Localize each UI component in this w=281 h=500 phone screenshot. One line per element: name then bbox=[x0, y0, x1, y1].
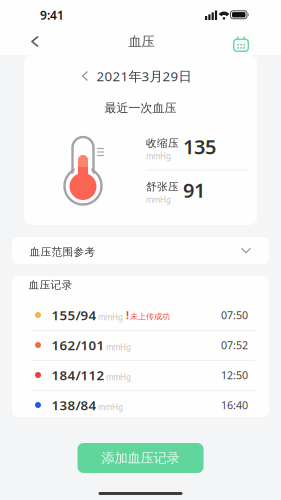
staticText: 收缩压 bbox=[146, 137, 179, 150]
staticText: 07:50 bbox=[221, 308, 248, 322]
staticText: 07:52 bbox=[221, 338, 248, 352]
button[interactable]: Calendar bbox=[227, 30, 255, 58]
staticText: 未上传成功 bbox=[130, 312, 170, 321]
button[interactable]: 138/84 bbox=[12, 390, 269, 420]
button[interactable]: 184/112 bbox=[12, 360, 269, 390]
staticText: ! bbox=[126, 308, 129, 322]
staticText: 最近一次血压 bbox=[104, 101, 176, 115]
staticText: mmHg bbox=[98, 312, 123, 322]
staticText: 2021年3月29日 bbox=[96, 67, 191, 85]
staticText: 135 bbox=[183, 133, 216, 160]
staticText: mmHg bbox=[146, 151, 171, 161]
staticText: mmHg bbox=[146, 194, 171, 205]
staticText: 155/94 bbox=[51, 306, 96, 324]
staticText: 184/112 bbox=[51, 366, 104, 384]
button[interactable]: 155/94 bbox=[12, 300, 269, 330]
staticText: 138/84 bbox=[51, 396, 96, 414]
staticText: 162/101 bbox=[51, 336, 104, 354]
staticText: 16:40 bbox=[221, 398, 248, 412]
staticText: 9:41 bbox=[40, 7, 64, 23]
staticText: 舒张压 bbox=[146, 180, 179, 193]
staticText: 91 bbox=[183, 177, 205, 203]
button[interactable]: 2021年3月29日 bbox=[78, 63, 195, 89]
staticText: mmHg bbox=[106, 342, 131, 352]
button[interactable]: 添加血压记录 bbox=[77, 443, 203, 473]
staticText: 12:50 bbox=[221, 368, 248, 382]
staticText: 血压记录 bbox=[28, 278, 72, 291]
staticText: 血压 bbox=[128, 33, 154, 50]
button[interactable]: 162/101 bbox=[12, 330, 269, 360]
button[interactable]: Back bbox=[22, 26, 48, 56]
staticText: mmHg bbox=[106, 372, 131, 382]
button[interactable]: 血压范围参考 bbox=[12, 237, 269, 264]
staticText: 添加血压记录 bbox=[101, 450, 179, 466]
staticText: 血压范围参考 bbox=[29, 245, 95, 258]
staticText: mmHg bbox=[98, 402, 123, 412]
